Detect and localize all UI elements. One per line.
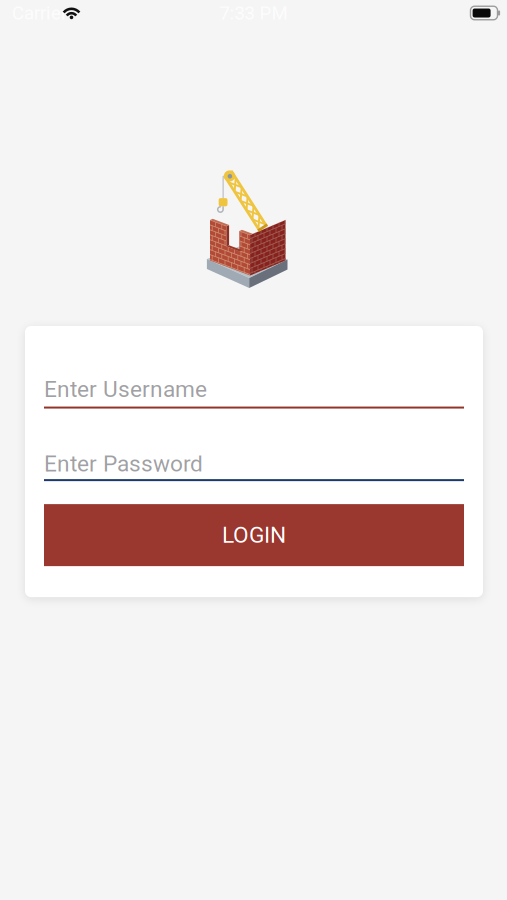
staticText: Enter Username: [44, 376, 207, 403]
button[interactable]: LOGIN: [44, 504, 464, 566]
staticText: Carrier: [12, 2, 67, 24]
staticText: Enter Password: [44, 451, 203, 477]
staticText: LOGIN: [222, 522, 286, 548]
